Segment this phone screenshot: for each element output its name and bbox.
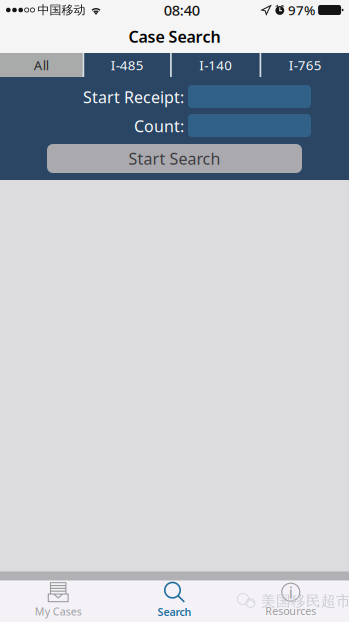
staticText: Resources xyxy=(265,604,316,618)
staticText: 08:40 xyxy=(164,0,200,20)
staticText: i xyxy=(289,581,293,603)
button[interactable]: My Cases xyxy=(0,581,116,622)
button[interactable]: I-140 xyxy=(172,53,260,77)
button[interactable]: i xyxy=(233,581,349,622)
staticText: 中国移动 xyxy=(38,3,86,17)
staticText: Count: xyxy=(134,115,184,137)
button[interactable]: All xyxy=(0,53,83,77)
staticText: I-485 xyxy=(111,56,144,74)
button[interactable]: I-765 xyxy=(261,53,349,77)
staticText: Search xyxy=(157,605,191,619)
staticText: 97% xyxy=(288,1,315,19)
button[interactable]: Start Search xyxy=(47,144,302,173)
button[interactable]: I-485 xyxy=(84,53,170,77)
staticText: I-140 xyxy=(199,56,232,74)
staticText: My Cases xyxy=(35,604,82,618)
staticText: Case Search xyxy=(128,26,220,47)
staticText: All xyxy=(34,56,49,74)
staticText: Start Receipt: xyxy=(83,86,184,108)
button[interactable]: Search xyxy=(116,581,233,622)
staticText: Start Search xyxy=(128,148,220,169)
staticText: I-765 xyxy=(289,56,322,74)
staticText: 美国移民超市 xyxy=(261,592,349,610)
